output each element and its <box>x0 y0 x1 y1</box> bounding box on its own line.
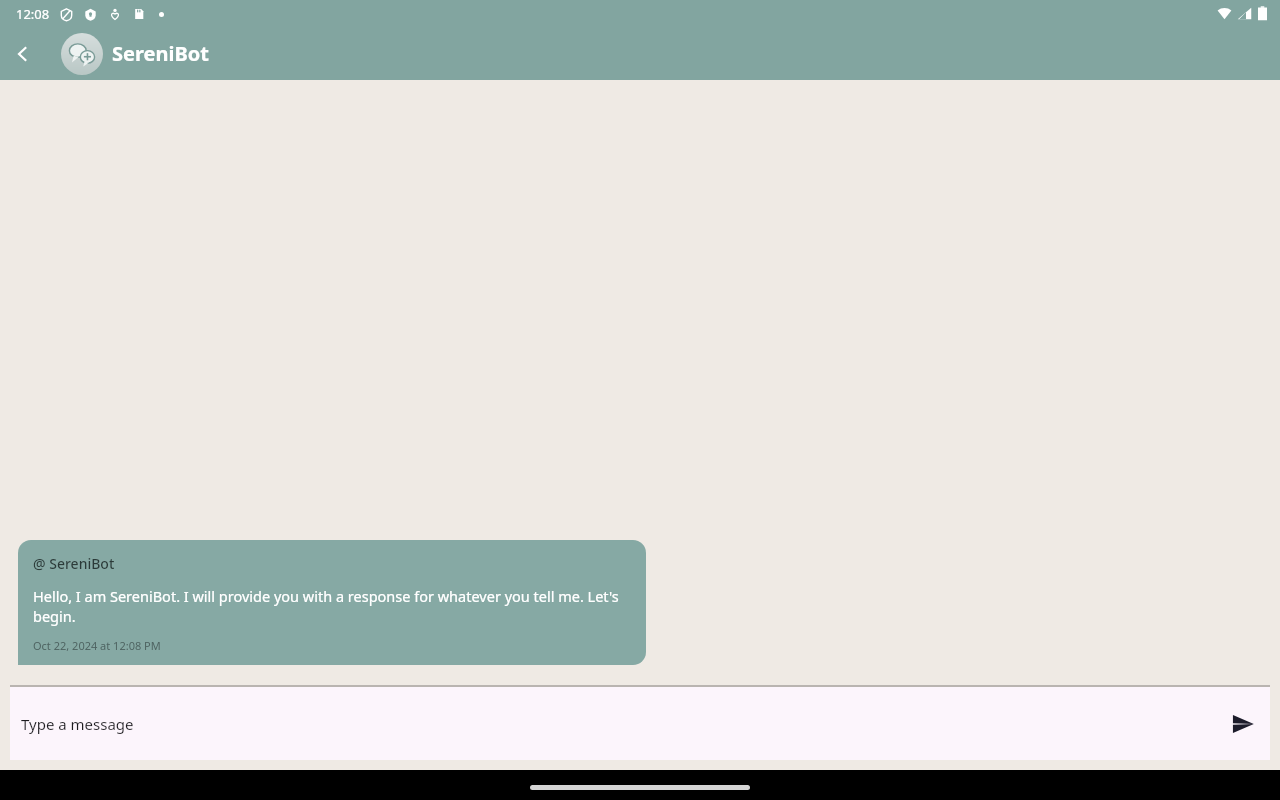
staticText: 12:08 <box>16 5 50 23</box>
staticText: Hello, I am SereniBot. I will provide yo… <box>33 586 631 626</box>
staticText: Oct 22, 2024 at 12:08 PM <box>33 638 161 653</box>
button[interactable]: Send <box>1220 701 1266 747</box>
staticText: SereniBot <box>112 40 209 67</box>
staticText: Type a message <box>21 714 1220 734</box>
staticText: @ SereniBot <box>33 554 115 573</box>
button[interactable]: Back <box>6 37 40 71</box>
button[interactable]: @ SereniBot <box>18 540 646 665</box>
button[interactable]: Type a message <box>10 687 1270 760</box>
